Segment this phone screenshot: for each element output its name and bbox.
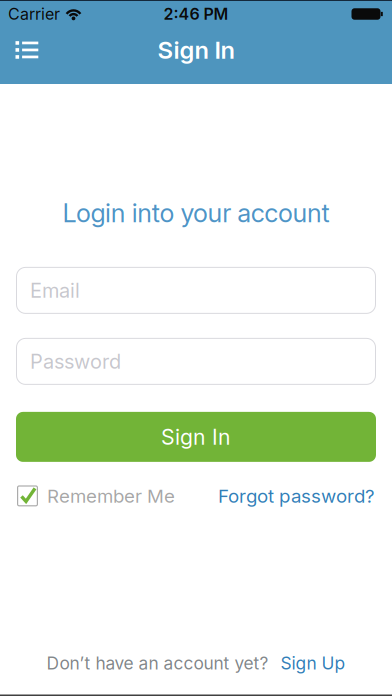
staticText: Forgot password? (218, 485, 375, 507)
button[interactable]: Remember Me (17, 485, 175, 507)
button[interactable]: Menu (6, 28, 48, 72)
staticText: Sign Up (280, 653, 345, 673)
button[interactable]: Sign In (16, 412, 376, 462)
staticText: Don’t have an account yet? (46, 653, 268, 673)
staticText: Sign In (161, 424, 231, 449)
staticText: Carrier (8, 5, 60, 23)
staticText: Email (30, 279, 80, 302)
button[interactable]: Email (16, 267, 376, 314)
button[interactable]: Password (16, 338, 376, 385)
staticText: Login into your account (62, 198, 330, 228)
staticText: Remember Me (47, 485, 175, 507)
button[interactable]: Sign Up (280, 653, 345, 673)
staticText: 2:46 PM (163, 5, 228, 23)
button[interactable]: Forgot password? (218, 485, 375, 507)
staticText: Sign In (157, 36, 234, 64)
staticText: Password (30, 350, 121, 373)
